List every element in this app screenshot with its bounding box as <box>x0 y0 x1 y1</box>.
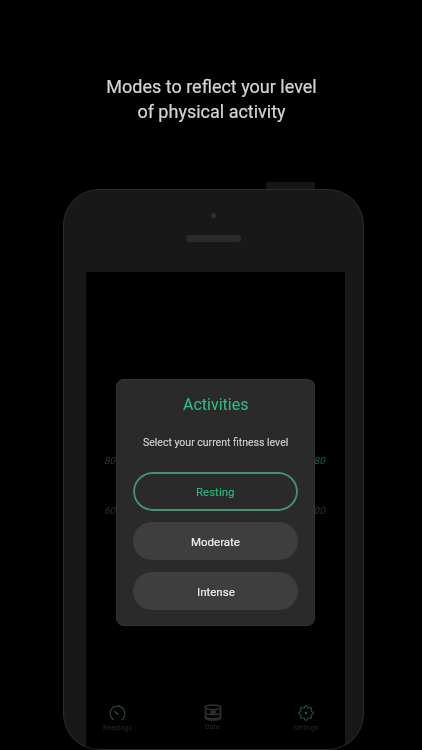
staticText: 60 <box>104 505 116 517</box>
staticText: of physical activity <box>137 101 286 122</box>
staticText: Intense <box>197 585 235 598</box>
staticText: Readings <box>103 724 132 732</box>
staticText: 100 <box>308 505 325 517</box>
button[interactable]: Readings <box>90 705 145 732</box>
button[interactable]: Settings <box>278 705 333 732</box>
button[interactable]: Intense <box>133 572 298 610</box>
staticText: Moderate <box>191 535 240 548</box>
staticText: 80 <box>104 455 116 467</box>
button[interactable]: Resting <box>133 472 298 511</box>
button[interactable]: Data <box>185 705 240 731</box>
staticText: Modes to reflect your level <box>106 76 317 97</box>
button[interactable]: Moderate <box>133 522 298 560</box>
staticText: Select your current fitness level <box>143 436 289 448</box>
staticText: Settings <box>293 724 319 732</box>
staticText: 180 <box>308 455 325 467</box>
staticText: Data <box>205 723 220 731</box>
other: Readings <box>109 705 126 721</box>
other: Settings <box>298 705 314 721</box>
staticText: Activities <box>183 395 249 414</box>
other: Data <box>205 705 221 720</box>
staticText: Resting <box>196 485 235 498</box>
